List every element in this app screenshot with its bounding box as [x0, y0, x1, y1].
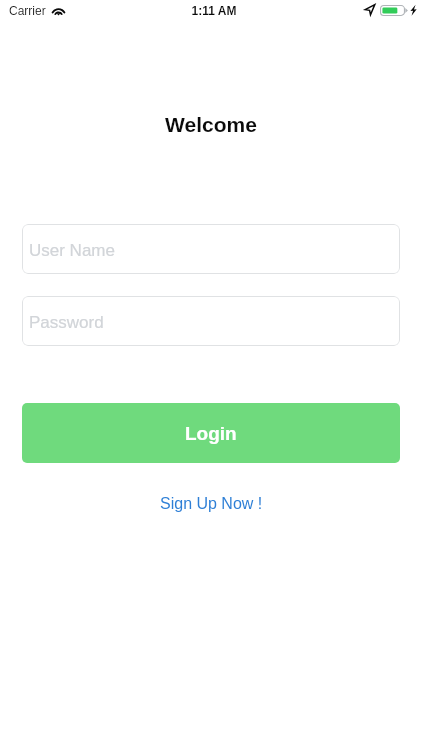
button[interactable]: Password — [22, 296, 400, 346]
button[interactable]: Sign Up Now ! — [150, 491, 273, 517]
staticText: 1:11 AM — [3, 4, 422, 17]
other: Wi-Fi signal — [51, 5, 66, 15]
staticText: Welcome — [165, 113, 257, 136]
staticText: User Name — [29, 241, 115, 260]
other: Battery charging — [380, 5, 408, 16]
staticText: Login — [185, 423, 237, 444]
other: Charging — [410, 4, 417, 16]
staticText: Sign Up Now ! — [160, 495, 263, 513]
button[interactable]: Login — [22, 403, 400, 463]
other: Location services active — [365, 4, 375, 15]
staticText: Password — [29, 313, 104, 332]
button[interactable]: User Name — [22, 224, 400, 274]
staticText: Carrier — [9, 4, 46, 17]
